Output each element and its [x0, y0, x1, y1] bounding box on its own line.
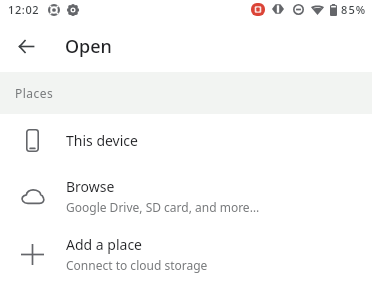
staticText: Google Drive, SD card, and more… [66, 199, 260, 215]
button[interactable]: This device [0, 113, 372, 167]
staticText: Connect to cloud storage [66, 257, 208, 273]
button[interactable]: Add a place [0, 225, 372, 283]
staticText: Places [15, 85, 54, 101]
button[interactable]: Back [4, 25, 46, 67]
staticText: 85% [341, 2, 367, 17]
button[interactable]: Browse [0, 167, 372, 225]
staticText: This device [66, 131, 138, 150]
staticText: 12:02 [8, 2, 40, 17]
staticText: Browse [66, 177, 115, 196]
staticText: Add a place [66, 235, 142, 254]
staticText: Open [65, 34, 112, 59]
